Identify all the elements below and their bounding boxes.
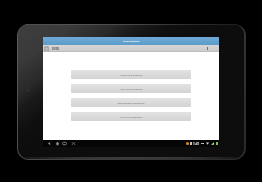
staticText: Replacement Inspection — [117, 101, 145, 104]
button[interactable]: Replacement Inspection — [71, 98, 191, 107]
staticText: 1:41 — [193, 142, 200, 146]
button[interactable]: More options — [206, 47, 209, 50]
button[interactable]: Recents — [62, 141, 67, 146]
button[interactable]: Post Trip Inspection — [71, 84, 191, 93]
staticText: Dot Post Inspection — [120, 115, 143, 118]
button[interactable]: Morning Inspection — [71, 70, 191, 79]
staticText: DVIR Inspection — [123, 40, 140, 43]
staticText: DVIR — [52, 47, 59, 51]
button[interactable]: Dot Post Inspection — [71, 112, 191, 121]
staticText: Morning Inspection — [120, 73, 143, 76]
staticText: Post Trip Inspection — [120, 87, 143, 90]
button[interactable]: Fullscreen — [71, 141, 76, 146]
button[interactable]: Home — [55, 141, 60, 146]
button[interactable]: Back — [47, 141, 52, 146]
